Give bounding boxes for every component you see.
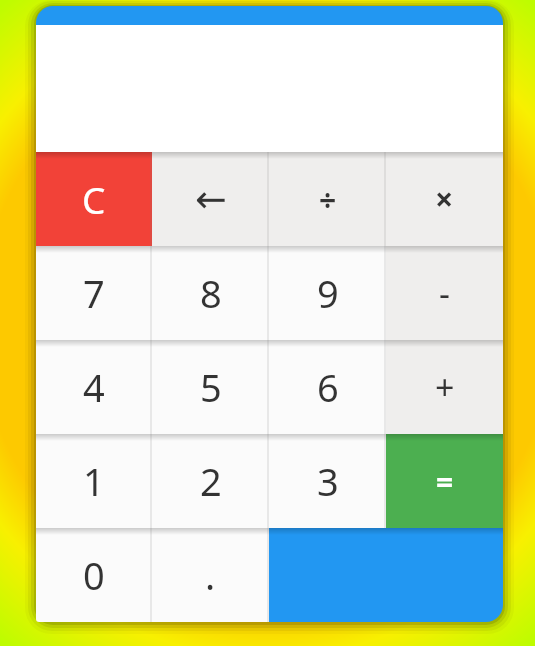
button[interactable]: = bbox=[386, 434, 503, 528]
button[interactable]: + bbox=[386, 340, 503, 434]
staticText: 9 bbox=[317, 267, 339, 319]
button[interactable]: × bbox=[386, 152, 503, 246]
button[interactable]: 2 bbox=[152, 434, 269, 528]
button[interactable]: 1 bbox=[36, 434, 152, 528]
button[interactable]: 6 bbox=[269, 340, 386, 434]
staticText: 8 bbox=[200, 267, 222, 319]
button[interactable] bbox=[269, 528, 503, 622]
button[interactable]: 0 bbox=[36, 528, 152, 622]
button[interactable]: 7 bbox=[36, 246, 152, 340]
staticText: - bbox=[439, 270, 450, 316]
staticText: 7 bbox=[83, 267, 105, 319]
staticText: . bbox=[205, 549, 216, 601]
staticText: 1 bbox=[83, 455, 105, 507]
staticText: 6 bbox=[317, 361, 339, 413]
staticText: 4 bbox=[83, 361, 105, 413]
staticText: ← bbox=[195, 177, 227, 221]
button[interactable]: C bbox=[36, 152, 152, 246]
staticText: 2 bbox=[200, 455, 222, 507]
button[interactable]: - bbox=[386, 246, 503, 340]
button[interactable]: 5 bbox=[152, 340, 269, 434]
button[interactable]: 8 bbox=[152, 246, 269, 340]
staticText: C bbox=[82, 174, 106, 224]
staticText: 5 bbox=[200, 361, 222, 413]
staticText: = bbox=[436, 461, 454, 502]
button[interactable]: . bbox=[152, 528, 269, 622]
staticText: ÷ bbox=[319, 179, 337, 220]
button[interactable]: ← bbox=[152, 152, 269, 246]
button[interactable]: ÷ bbox=[269, 152, 386, 246]
button[interactable]: 3 bbox=[269, 434, 386, 528]
staticText: × bbox=[435, 177, 454, 221]
button[interactable]: 9 bbox=[269, 246, 386, 340]
staticText: 0 bbox=[83, 549, 105, 601]
staticText: 3 bbox=[317, 455, 339, 507]
staticText: + bbox=[435, 364, 455, 410]
button[interactable]: 4 bbox=[36, 340, 152, 434]
